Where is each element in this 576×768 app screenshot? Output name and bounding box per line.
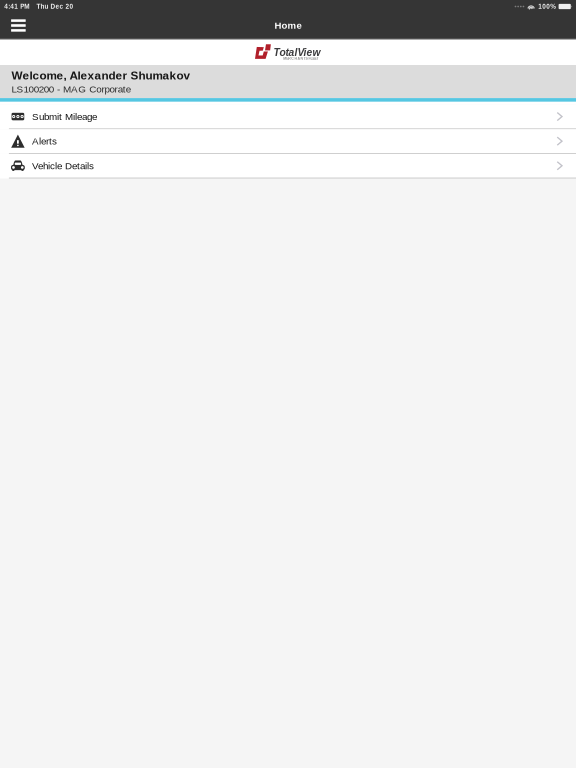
- staticText: MERCHANTS FLEET: [283, 56, 319, 60]
- staticText: 4:41 PM: [4, 3, 29, 10]
- staticText: TotalView: [274, 47, 321, 58]
- button[interactable]: Vehicle Details: [0, 154, 576, 178]
- staticText: LS100200 - MAG Corporate: [11, 84, 131, 95]
- button[interactable]: Alerts: [0, 129, 576, 154]
- staticText: Submit Mileage: [32, 111, 97, 122]
- staticText: Welcome, Alexander Shumakov: [11, 69, 190, 82]
- button[interactable]: Menu: [7, 13, 30, 38]
- staticText: 100%: [538, 3, 556, 10]
- staticText: Home: [274, 20, 301, 31]
- staticText: Thu Dec 20: [36, 3, 73, 10]
- staticText: Vehicle Details: [32, 160, 94, 171]
- button[interactable]: Submit Mileage: [0, 105, 576, 129]
- staticText: Alerts: [32, 136, 57, 147]
